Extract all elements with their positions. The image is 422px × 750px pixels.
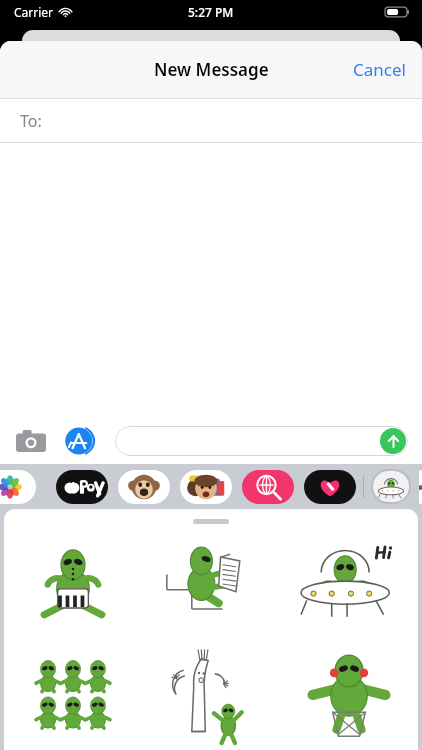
- button[interactable]: Sticker: [142, 640, 280, 750]
- button[interactable]: Sticker: [280, 640, 418, 750]
- button[interactable]: Alien stickers: [373, 471, 409, 502]
- button[interactable]: Apple Pay: [56, 470, 108, 504]
- button[interactable]: Sticker: [142, 528, 280, 640]
- button[interactable]: Memoji monkey: [118, 470, 170, 504]
- button[interactable]: Memoji: [180, 470, 232, 504]
- staticText: Carrier: [14, 4, 54, 20]
- button[interactable]: Send: [115, 426, 408, 456]
- button[interactable]: Sticker: [4, 528, 142, 640]
- button[interactable]: Send: [380, 428, 406, 454]
- button[interactable]: Camera: [14, 424, 48, 458]
- button[interactable]: Sticker: [280, 528, 418, 640]
- staticText: Cancel: [353, 58, 406, 81]
- button[interactable]: Image search: [242, 470, 294, 504]
- button[interactable]: More apps: [419, 470, 422, 504]
- staticText: New Message: [154, 58, 269, 81]
- staticText: 5:27 PM: [188, 4, 234, 20]
- button[interactable]: Digital Touch: [304, 470, 356, 504]
- staticText: To:: [20, 110, 42, 132]
- button[interactable]: App Store: [63, 424, 97, 458]
- button[interactable]: Cancel: [337, 48, 422, 91]
- button[interactable]: Photos: [0, 470, 36, 504]
- button[interactable]: Sticker: [4, 640, 142, 750]
- button[interactable]: To:: [0, 99, 422, 142]
